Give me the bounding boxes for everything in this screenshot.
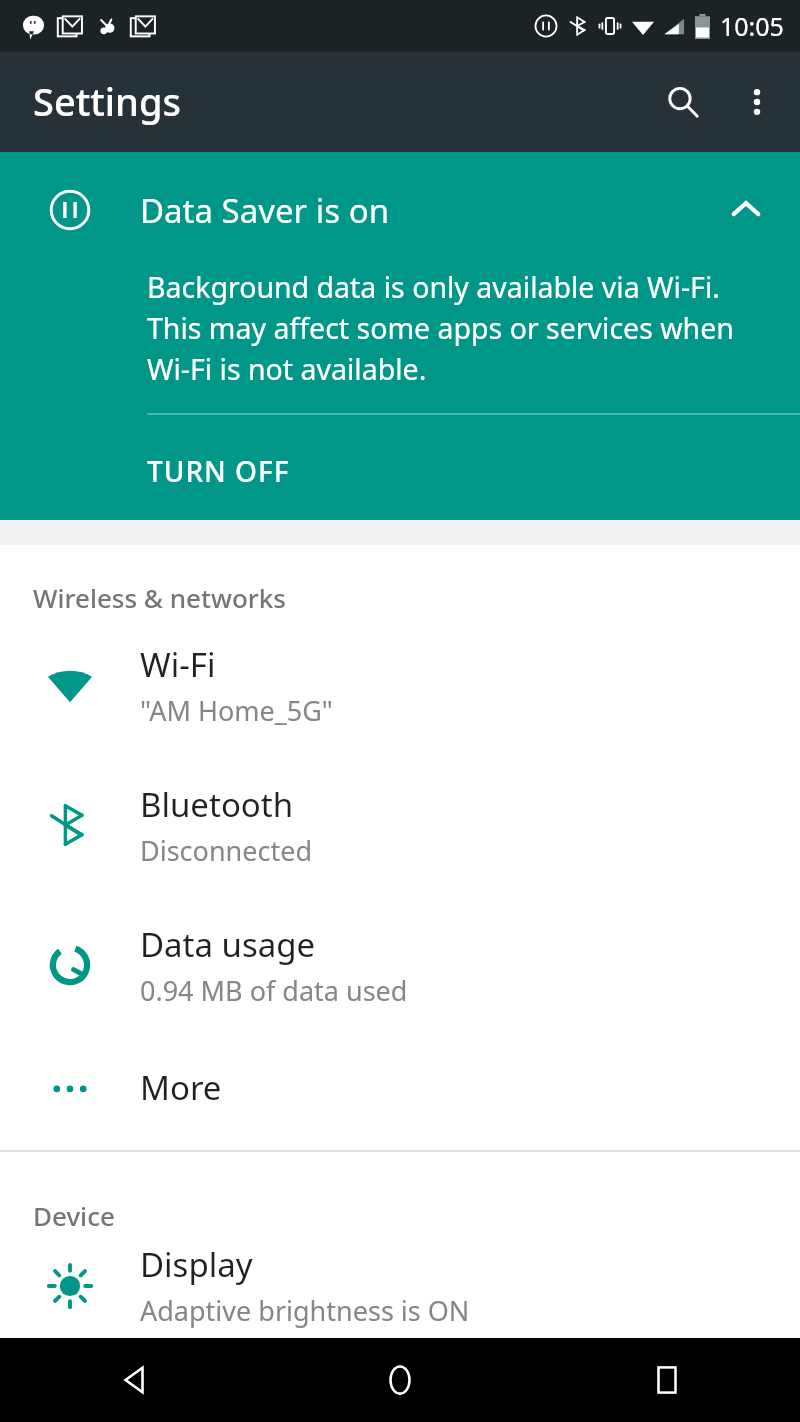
- button[interactable]: Data usage: [0, 895, 800, 1035]
- staticText: Settings: [33, 75, 181, 127]
- other: Collapse: [692, 152, 800, 268]
- staticText: 10:05: [720, 9, 784, 43]
- button[interactable]: Recent apps: [533, 1338, 800, 1422]
- staticText: More: [140, 1065, 222, 1110]
- staticText: Device: [33, 1198, 115, 1233]
- staticText: "AM Home_5G": [140, 692, 333, 729]
- staticText: Adaptive brightness is ON: [140, 1292, 470, 1329]
- staticText: Disconnected: [140, 832, 313, 869]
- staticText: Bluetooth: [140, 782, 294, 827]
- staticText: Wi-Fi: [140, 642, 216, 687]
- button[interactable]: Search: [651, 70, 715, 134]
- staticText: Background data is only available via Wi…: [147, 268, 738, 389]
- staticText: Wireless & networks: [33, 580, 287, 615]
- button[interactable]: Bluetooth: [0, 755, 800, 895]
- button[interactable]: More: [0, 1035, 800, 1140]
- button[interactable]: Wi-Fi: [0, 615, 800, 755]
- staticText: Data usage: [140, 922, 316, 967]
- button[interactable]: More options: [725, 70, 789, 134]
- button[interactable]: Display: [0, 1233, 800, 1338]
- staticText: Data Saver is on: [140, 188, 692, 233]
- button[interactable]: TURN OFF: [0, 415, 800, 520]
- button[interactable]: Data Saver is on: [0, 152, 800, 268]
- staticText: Display: [140, 1242, 253, 1287]
- staticText: 0.94 MB of data used: [140, 972, 408, 1009]
- button[interactable]: Back: [0, 1338, 266, 1422]
- button[interactable]: Home: [266, 1338, 533, 1422]
- staticText: TURN OFF: [147, 452, 290, 490]
